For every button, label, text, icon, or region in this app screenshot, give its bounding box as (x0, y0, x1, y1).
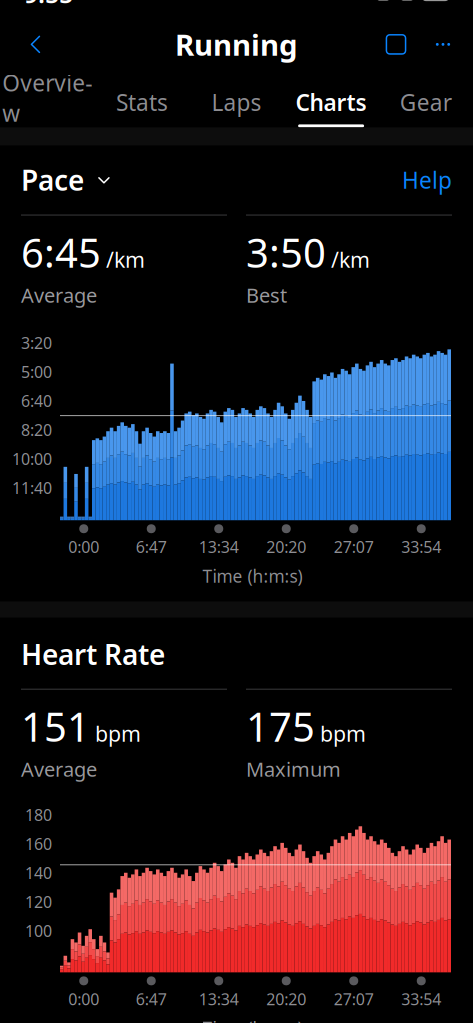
staticText: 13:34 (199, 988, 239, 1010)
staticText: 5:00 (21, 361, 52, 382)
staticText: 0:00 (68, 536, 99, 557)
staticText: Stats (116, 87, 168, 117)
staticText: Laps (211, 87, 261, 117)
button[interactable]: Back (8, 19, 64, 69)
staticText: 140 (25, 862, 52, 883)
staticText: 3:50 (246, 226, 326, 279)
staticText: Time (h:m:s) (202, 564, 302, 587)
staticText: /km (106, 245, 145, 273)
staticText: 120 (25, 891, 52, 912)
button[interactable]: Stats (95, 71, 189, 127)
button[interactable]: Help (402, 165, 452, 195)
staticText: 10:00 (12, 448, 52, 469)
staticText: 33:54 (401, 536, 441, 557)
staticText: 160 (25, 833, 52, 854)
staticText: 100 (25, 920, 52, 941)
button[interactable]: Pace (21, 161, 113, 199)
staticText: Pace (21, 161, 84, 199)
staticText: Overview (2, 68, 92, 128)
button[interactable]: Charts (284, 71, 378, 127)
staticText: bpm (95, 719, 141, 748)
button[interactable]: Overview (0, 71, 95, 127)
staticText: 3:20 (21, 332, 52, 353)
staticText: Heart Rate (21, 635, 165, 673)
staticText: 6:40 (21, 390, 52, 411)
staticText: 6:47 (136, 536, 167, 557)
staticText: 0:00 (68, 988, 99, 1010)
staticText: Average (21, 282, 97, 308)
staticText: Maximum (246, 756, 341, 782)
button[interactable]: Laps (189, 71, 284, 127)
staticText: 20:20 (266, 988, 306, 1010)
staticText: 27:07 (334, 536, 374, 557)
staticText: Running (175, 25, 298, 64)
staticText: 6:45 (21, 226, 101, 279)
staticText: Help (402, 165, 452, 195)
staticText: Gear (400, 87, 452, 117)
staticText: 20:20 (266, 536, 306, 557)
staticText: bpm (320, 719, 366, 748)
button[interactable]: More options (421, 19, 465, 69)
staticText: Average (21, 756, 97, 782)
staticText: 180 (25, 804, 52, 825)
staticText: Best (246, 282, 287, 308)
staticText: 6:47 (136, 988, 167, 1010)
button[interactable]: Gear (378, 71, 473, 127)
staticText: 151 (21, 700, 90, 753)
staticText: 175 (246, 700, 315, 753)
button[interactable]: Share (371, 19, 421, 69)
staticText: 11:40 (12, 477, 52, 498)
staticText: 9:55 (24, 0, 73, 10)
staticText: 27:07 (334, 988, 374, 1010)
staticText: 13:34 (199, 536, 239, 557)
staticText: /km (331, 245, 370, 273)
staticText: 33:54 (401, 988, 441, 1010)
staticText: Charts (296, 87, 367, 117)
staticText: Time (h:m:s) (202, 1017, 302, 1023)
staticText: 8:20 (21, 419, 52, 440)
